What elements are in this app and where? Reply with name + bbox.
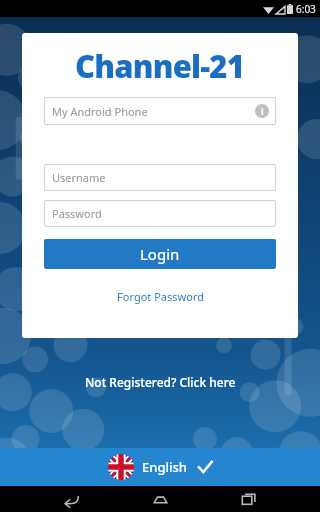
button[interactable]: Not Registered? Click here: [75, 370, 246, 394]
button[interactable]: My Android Phone: [44, 97, 276, 125]
button[interactable]: English: [0, 448, 320, 486]
button[interactable]: Back: [53, 486, 89, 512]
staticText: 6:03: [296, 2, 316, 16]
other: Selected: [197, 459, 213, 475]
staticText: Username: [52, 170, 106, 185]
staticText: i: [261, 105, 264, 117]
button[interactable]: Information: [255, 104, 269, 118]
button[interactable]: Home: [142, 486, 178, 512]
button[interactable]: Password: [44, 200, 276, 227]
staticText: Login: [140, 244, 180, 264]
staticText: English: [142, 458, 187, 476]
staticText: Forgot Password: [117, 289, 204, 304]
button[interactable]: Username: [44, 164, 276, 191]
button[interactable]: Recent apps: [231, 486, 267, 512]
staticText: Not Registered? Click here: [85, 374, 236, 390]
staticText: Channel-21: [75, 45, 245, 87]
button[interactable]: Forgot Password: [113, 285, 208, 308]
staticText: My Android Phone: [52, 104, 148, 119]
staticText: Password: [52, 206, 102, 221]
button[interactable]: Login: [44, 239, 276, 269]
